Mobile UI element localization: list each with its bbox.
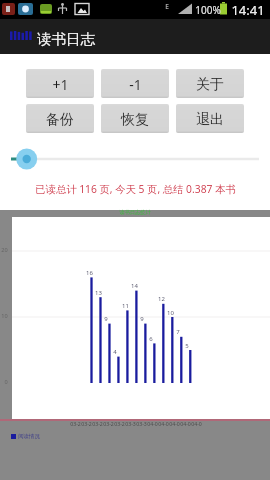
staticText: 03-29 (114, 420, 125, 427)
button[interactable]: 恢复 (101, 104, 169, 133)
staticText: -1 (129, 75, 142, 94)
staticText: 备份 (46, 111, 74, 129)
staticText: 04-02 (158, 420, 169, 427)
staticText: 0 (4, 378, 8, 386)
staticText: 16 (86, 269, 93, 277)
staticText: 读书日志统计 (119, 209, 151, 216)
staticText: 04-04 (180, 420, 191, 427)
staticText: 04-03 (169, 420, 180, 427)
staticText: 已读总计 116 页, 今天 5 页, 总结 0.387 本书 (35, 182, 236, 196)
staticText: 03-30 (125, 420, 136, 427)
staticText: 03-31 (136, 420, 147, 427)
button[interactable]: 备份 (26, 104, 94, 133)
staticText: 12 (158, 295, 165, 303)
staticText: 03-26 (81, 420, 92, 427)
staticText: +1 (52, 75, 69, 94)
staticText: 03-28 (103, 420, 114, 427)
button[interactable]: -1 (101, 69, 169, 98)
staticText: 10 (1, 312, 8, 320)
staticText: 04-05 (191, 420, 202, 427)
staticText: 5 (185, 342, 189, 350)
staticText: 03-27 (92, 420, 103, 427)
staticText: 11 (122, 302, 129, 310)
button[interactable]: 关于 (176, 69, 244, 98)
staticText: E (165, 2, 169, 11)
staticText: 9 (104, 315, 108, 323)
staticText: 100% (195, 3, 221, 17)
button[interactable]: +1 (26, 69, 94, 98)
staticText: 10 (167, 309, 174, 317)
button[interactable]: 退出 (176, 104, 244, 133)
staticText: 20 (1, 246, 8, 254)
button[interactable]: App logo (0, 19, 270, 54)
staticText: 13 (95, 289, 102, 297)
staticText: 4 (113, 348, 117, 356)
staticText: 7 (176, 328, 180, 336)
staticText: 14:41 (231, 1, 265, 19)
staticText: 6 (149, 335, 153, 343)
staticText: 恢复 (121, 111, 149, 129)
staticText: 9 (140, 315, 144, 323)
staticText: 关于 (196, 76, 224, 94)
staticText: 读书日志 (37, 30, 95, 48)
staticText: 退出 (196, 111, 224, 129)
button[interactable]: Reading progress slider (0, 149, 270, 169)
staticText: 04-01 (147, 420, 158, 427)
staticText: 03-25 (70, 420, 81, 427)
staticText: 14 (131, 282, 138, 290)
other: App logo (10, 31, 33, 40)
staticText: 阅读情况 (18, 433, 40, 440)
